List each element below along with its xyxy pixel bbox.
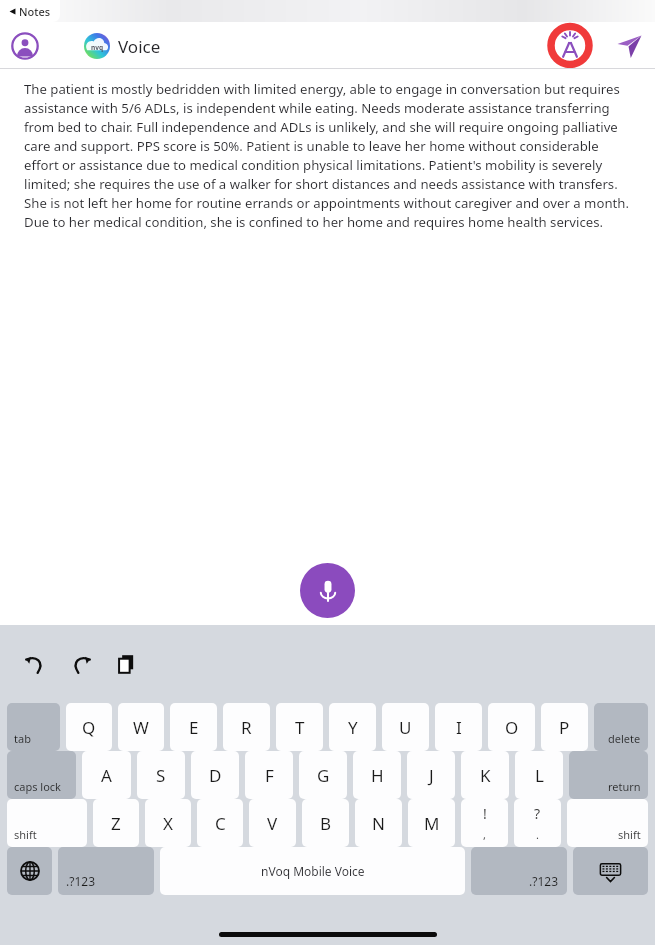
button[interactable]: L: [515, 751, 563, 799]
button[interactable]: F: [245, 751, 293, 799]
button[interactable]: G: [299, 751, 347, 799]
button[interactable]: Y: [329, 703, 376, 751]
staticText: D: [209, 764, 222, 787]
staticText: S: [156, 764, 166, 787]
staticText: .?123: [529, 873, 559, 889]
button[interactable]: T: [276, 703, 323, 751]
staticText: K: [480, 764, 491, 787]
staticText: J: [429, 764, 434, 787]
button[interactable]: shift: [7, 799, 87, 847]
staticText: E: [189, 716, 199, 739]
staticText: Notes: [19, 4, 51, 19]
button[interactable]: K: [461, 751, 509, 799]
staticText: !: [483, 804, 487, 823]
staticText: R: [241, 716, 252, 739]
button[interactable]: U: [382, 703, 429, 751]
button[interactable]: Account: [8, 29, 42, 63]
staticText: return: [608, 779, 641, 794]
button[interactable]: Send: [611, 28, 647, 64]
staticText: T: [295, 716, 305, 739]
staticText: caps lock: [14, 779, 61, 794]
button[interactable]: Paste: [110, 647, 144, 681]
staticText: shift: [618, 827, 641, 842]
button[interactable]: shift: [567, 799, 648, 847]
button[interactable]: B: [302, 799, 349, 847]
staticText: ?: [534, 804, 541, 823]
staticText: Y: [348, 716, 358, 739]
staticText: P: [559, 716, 570, 739]
button[interactable]: E: [170, 703, 217, 751]
staticText: shift: [14, 827, 37, 842]
staticText: X: [163, 812, 173, 835]
staticText: Voice: [118, 35, 161, 58]
button[interactable]: X: [145, 799, 191, 847]
staticText: Q: [82, 716, 96, 739]
button[interactable]: D: [191, 751, 239, 799]
button[interactable]: A: [82, 751, 131, 799]
staticText: .: [536, 827, 539, 842]
staticText: N: [372, 812, 385, 835]
staticText: H: [371, 764, 384, 787]
button[interactable]: ?: [514, 799, 561, 847]
button[interactable]: !: [461, 799, 508, 847]
button[interactable]: W: [118, 703, 164, 751]
staticText: B: [320, 812, 332, 835]
button[interactable]: I: [435, 703, 482, 751]
button[interactable]: R: [223, 703, 270, 751]
button[interactable]: .?123: [471, 847, 567, 895]
button[interactable]: tab: [7, 703, 60, 751]
button[interactable]: N: [355, 799, 402, 847]
staticText: tab: [14, 731, 31, 746]
staticText: C: [215, 812, 226, 835]
button[interactable]: Redo: [64, 647, 98, 681]
button[interactable]: P: [541, 703, 588, 751]
button[interactable]: delete: [594, 703, 648, 751]
staticText: L: [535, 764, 544, 787]
button[interactable]: Q: [66, 703, 112, 751]
button[interactable]: Z: [93, 799, 139, 847]
staticText: nVoq Mobile Voice: [261, 863, 365, 879]
button[interactable]: Change keyboard language: [7, 847, 52, 895]
staticText: F: [265, 764, 274, 787]
button[interactable]: Microphone: [300, 563, 355, 618]
button[interactable]: C: [197, 799, 243, 847]
staticText: O: [505, 716, 519, 739]
button[interactable]: caps lock: [7, 751, 76, 799]
staticText: nvq: [91, 43, 104, 52]
button[interactable]: O: [488, 703, 535, 751]
button[interactable]: S: [137, 751, 185, 799]
button[interactable]: return: [569, 751, 648, 799]
button[interactable]: Accuracy assistant: [538, 22, 602, 69]
staticText: .?123: [66, 873, 96, 889]
button[interactable]: Undo: [18, 647, 52, 681]
button[interactable]: V: [249, 799, 296, 847]
staticText: A: [101, 764, 112, 787]
button[interactable]: H: [353, 751, 401, 799]
button[interactable]: M: [408, 799, 455, 847]
button[interactable]: Hide keyboard: [573, 847, 648, 895]
staticText: W: [133, 716, 149, 739]
staticText: delete: [608, 731, 641, 746]
button[interactable]: Notes: [0, 0, 60, 22]
staticText: I: [456, 716, 462, 739]
button[interactable]: nVoq Mobile Voice: [160, 847, 465, 895]
button[interactable]: J: [407, 751, 455, 799]
staticText: M: [424, 812, 440, 835]
staticText: The patient is mostly bedridden with lim…: [24, 80, 633, 231]
staticText: U: [399, 716, 412, 739]
staticText: G: [317, 764, 330, 787]
staticText: ,: [483, 827, 486, 842]
staticText: Z: [111, 812, 121, 835]
button[interactable]: .?123: [58, 847, 154, 895]
staticText: V: [267, 812, 278, 835]
